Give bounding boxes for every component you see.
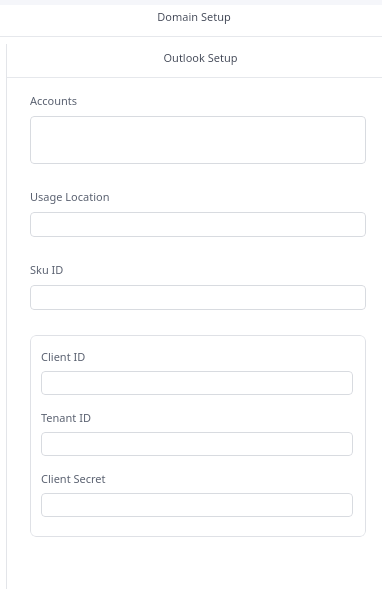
staticText: Accounts <box>30 93 78 108</box>
button[interactable]: Outlook Setup <box>23 50 378 77</box>
button[interactable]: Sku ID input <box>30 285 366 310</box>
staticText: Tenant ID <box>41 410 91 425</box>
staticText: Client Secret <box>41 471 106 486</box>
staticText: Outlook Setup <box>163 50 238 65</box>
button[interactable]: Client Secret input <box>41 493 353 517</box>
staticText: Sku ID <box>30 262 64 277</box>
button[interactable]: Usage Location input <box>30 212 366 237</box>
button[interactable]: Client ID input <box>41 371 353 395</box>
staticText: Usage Location <box>30 189 110 204</box>
button[interactable]: Tenant ID input <box>41 432 353 456</box>
button[interactable]: Accounts input <box>30 116 366 164</box>
button[interactable]: Domain Setup <box>10 9 378 36</box>
staticText: Domain Setup <box>157 9 231 24</box>
staticText: Client ID <box>41 349 86 364</box>
